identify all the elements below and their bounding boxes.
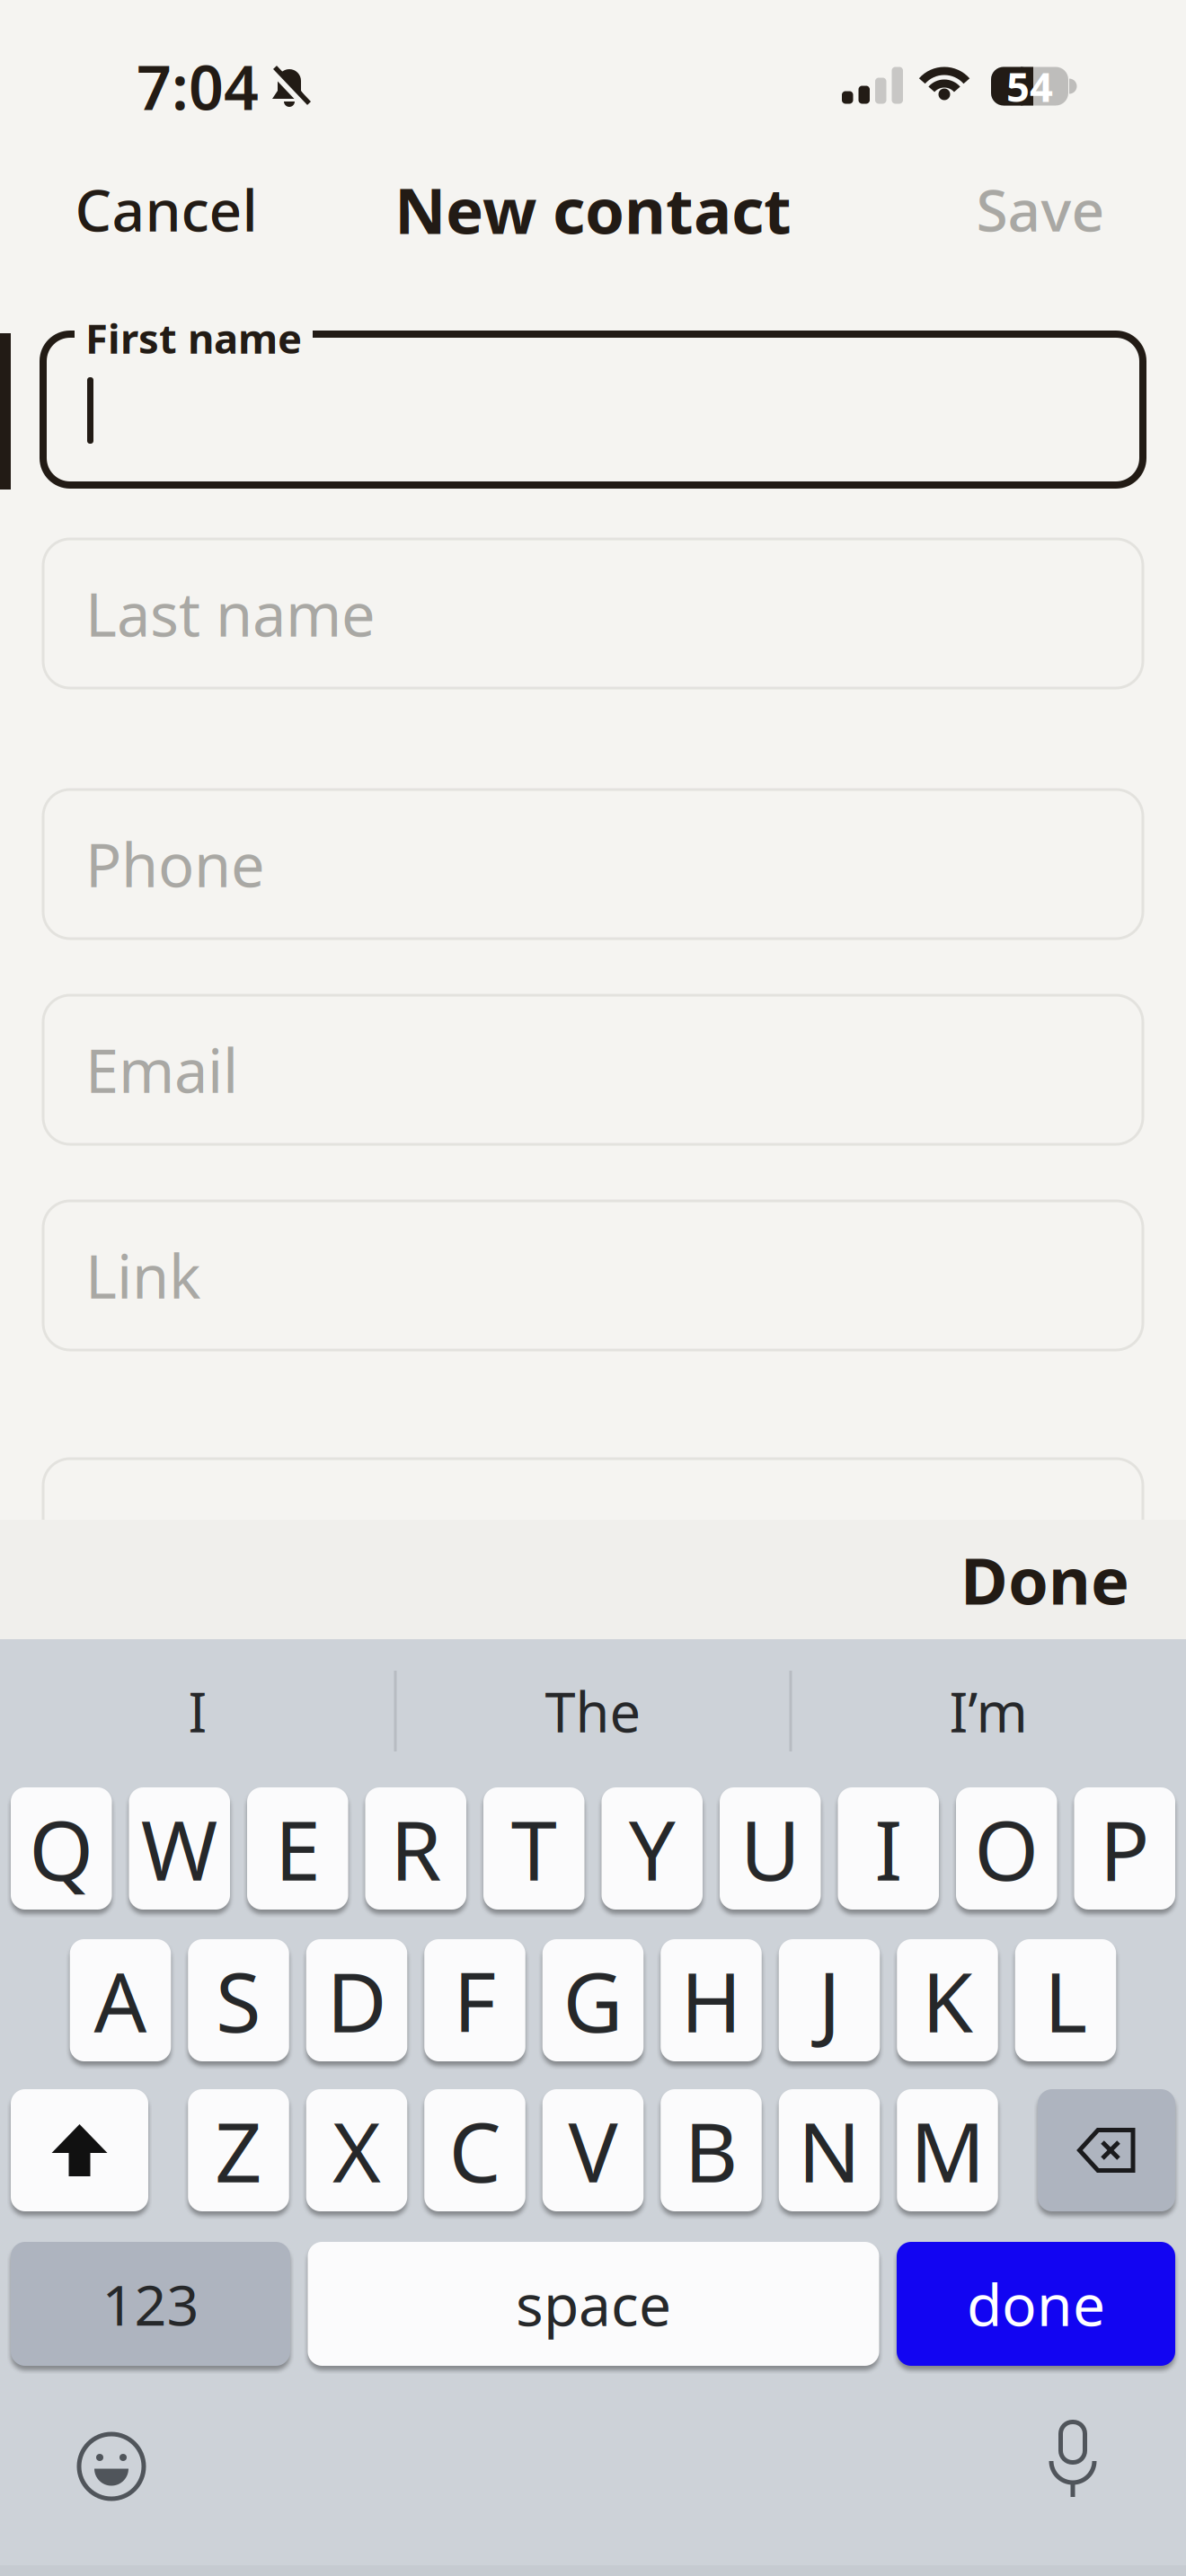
button[interactable]: First name: [43, 334, 1143, 485]
staticText: The: [545, 1674, 641, 1748]
button[interactable]: H: [661, 1939, 762, 2061]
button[interactable]: V: [543, 2089, 644, 2211]
staticText: N: [798, 2095, 861, 2205]
staticText: Q: [29, 1794, 94, 1903]
button[interactable]: U: [720, 1787, 821, 1910]
button[interactable]: Phone: [43, 790, 1143, 939]
button[interactable]: M: [897, 2089, 998, 2211]
staticText: Cancel: [75, 171, 257, 247]
staticText: B: [684, 2095, 738, 2205]
button[interactable]: [43, 1459, 1143, 1608]
staticText: W: [141, 1794, 218, 1903]
button[interactable]: T: [483, 1787, 584, 1910]
staticText: I’m: [949, 1674, 1027, 1748]
button[interactable]: X: [306, 2089, 407, 2211]
button[interactable]: B: [661, 2089, 762, 2211]
button[interactable]: The: [400, 1657, 786, 1765]
button[interactable]: D: [306, 1939, 407, 2061]
staticText: V: [568, 2095, 618, 2205]
staticText: Y: [629, 1794, 675, 1903]
button[interactable]: [1046, 2422, 1100, 2500]
button[interactable]: [1038, 2089, 1175, 2211]
staticText: J: [818, 1945, 841, 2055]
staticText: U: [740, 1794, 800, 1903]
button[interactable]: space: [308, 2242, 879, 2366]
button[interactable]: W: [129, 1787, 230, 1910]
staticText: M: [910, 2095, 985, 2205]
staticText: P: [1100, 1794, 1150, 1903]
button[interactable]: done: [897, 2242, 1175, 2366]
button[interactable]: K: [897, 1939, 998, 2061]
button[interactable]: F: [424, 1939, 525, 2061]
staticText: A: [94, 1945, 147, 2055]
button[interactable]: S: [188, 1939, 289, 2061]
button[interactable]: Link: [43, 1201, 1143, 1350]
button[interactable]: I: [4, 1657, 391, 1765]
button[interactable]: Q: [11, 1787, 112, 1910]
staticText: space: [516, 2266, 671, 2342]
button[interactable]: I’m: [795, 1657, 1182, 1765]
button[interactable]: Email: [43, 995, 1143, 1144]
staticText: L: [1044, 1945, 1087, 2055]
staticText: Email: [85, 1030, 238, 1109]
button[interactable]: E: [247, 1787, 348, 1910]
staticText: F: [453, 1945, 496, 2055]
button[interactable]: [11, 2089, 148, 2211]
staticText: X: [332, 2095, 381, 2205]
staticText: I: [188, 1674, 207, 1748]
staticText: New contact: [394, 167, 792, 251]
staticText: T: [511, 1794, 557, 1903]
staticText: 123: [102, 2266, 199, 2341]
button[interactable]: Done: [960, 1537, 1186, 1622]
button[interactable]: C: [424, 2089, 525, 2211]
button[interactable]: R: [365, 1787, 466, 1910]
staticText: 54: [1006, 59, 1053, 113]
button[interactable]: P: [1074, 1787, 1175, 1910]
staticText: Save: [976, 171, 1105, 247]
button[interactable]: Y: [602, 1787, 703, 1910]
staticText: K: [922, 1945, 973, 2055]
staticText: Z: [215, 2095, 262, 2205]
button[interactable]: Z: [188, 2089, 289, 2211]
button[interactable]: [79, 2434, 144, 2499]
staticText: E: [275, 1794, 321, 1903]
staticText: Link: [85, 1236, 201, 1315]
button[interactable]: J: [779, 1939, 880, 2061]
button[interactable]: 123: [11, 2242, 290, 2366]
button[interactable]: L: [1015, 1939, 1116, 2061]
button[interactable]: G: [543, 1939, 644, 2061]
staticText: First name: [85, 311, 302, 365]
button[interactable]: A: [70, 1939, 171, 2061]
staticText: done: [967, 2266, 1105, 2342]
staticText: C: [449, 2095, 501, 2205]
button[interactable]: Last name: [43, 539, 1143, 688]
staticText: H: [681, 1945, 742, 2055]
button[interactable]: O: [956, 1787, 1057, 1910]
staticText: Done: [960, 1537, 1129, 1622]
staticText: 7:04: [137, 46, 259, 127]
button[interactable]: Save: [976, 171, 1105, 247]
staticText: S: [216, 1945, 261, 2055]
staticText: D: [327, 1945, 387, 2055]
staticText: G: [563, 1945, 623, 2055]
staticText: R: [390, 1794, 441, 1903]
staticText: Last name: [85, 574, 376, 653]
staticText: O: [974, 1794, 1039, 1903]
staticText: Phone: [85, 824, 265, 904]
button[interactable]: N: [779, 2089, 880, 2211]
staticText: I: [874, 1794, 902, 1903]
button[interactable]: I: [838, 1787, 939, 1910]
button[interactable]: Cancel: [75, 171, 257, 247]
